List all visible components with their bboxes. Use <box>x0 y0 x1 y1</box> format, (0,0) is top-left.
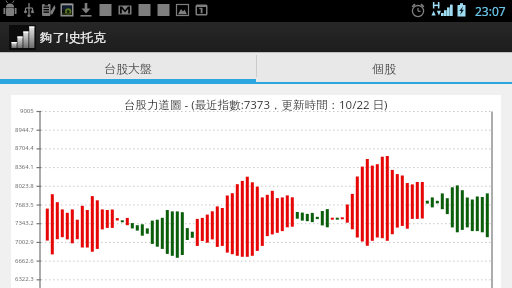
staticText: 6662.6 <box>15 257 34 265</box>
staticText: 7343.2 <box>15 219 34 227</box>
staticText: 7683.5 <box>15 201 34 209</box>
staticText: 8944.7 <box>15 126 34 134</box>
staticText: 台股大盤 <box>104 61 152 76</box>
staticText: 個股 <box>372 61 396 76</box>
staticText: 9005 <box>20 107 34 115</box>
button[interactable]: 台股大盤 <box>0 52 256 84</box>
staticText: 6322.3 <box>15 275 34 283</box>
staticText: 8023.8 <box>15 182 34 190</box>
staticText: 8364.1 <box>15 163 34 171</box>
staticText: 23:07 <box>475 3 506 19</box>
staticText: 夠了!史托克 <box>40 29 106 46</box>
staticText: 8704.4 <box>15 144 34 152</box>
button[interactable]: 個股 <box>256 52 512 84</box>
button[interactable]: 夠了!史托克 <box>0 22 512 52</box>
staticText: 7002.9 <box>15 238 34 246</box>
staticText: 台股力道圖 - (最近指數:7373，更新時間：10/22 日) <box>124 97 388 113</box>
